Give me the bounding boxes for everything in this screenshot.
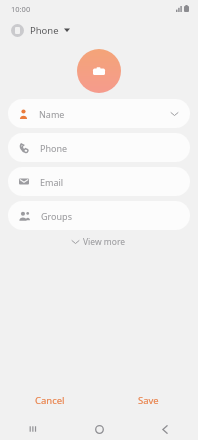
staticText: Cancel	[35, 394, 65, 407]
button[interactable]: Save	[99, 387, 198, 413]
button[interactable]: Add contact photo	[77, 49, 121, 93]
staticText: Email	[40, 176, 64, 188]
staticText: Phone	[30, 24, 59, 37]
button[interactable]: Phone	[8, 133, 190, 162]
button[interactable]: Home	[66, 418, 132, 440]
staticText: Save	[138, 394, 159, 407]
button[interactable]: Recent apps	[0, 418, 66, 440]
button[interactable]: Name	[8, 99, 190, 128]
button[interactable]: Phone	[0, 17, 81, 43]
button[interactable]: View more	[0, 230, 198, 254]
staticText: Groups	[41, 210, 72, 222]
staticText: View more	[83, 236, 126, 248]
button[interactable]: Groups	[8, 201, 190, 230]
button[interactable]: Back	[132, 418, 198, 440]
staticText: Name	[39, 108, 65, 120]
staticText: Phone	[40, 142, 68, 154]
button[interactable]: Email	[8, 167, 190, 196]
button[interactable]: Cancel	[0, 387, 99, 413]
staticText: 10:00	[11, 4, 31, 14]
